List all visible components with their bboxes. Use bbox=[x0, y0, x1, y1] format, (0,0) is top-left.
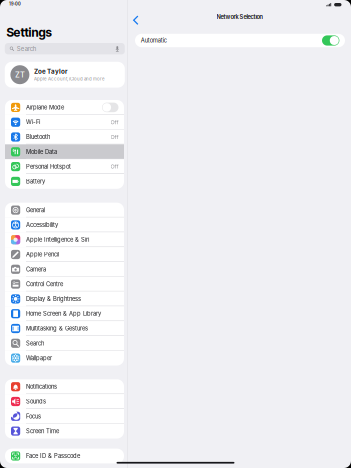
staticText: Off bbox=[110, 163, 118, 170]
button[interactable]: Bluetooth bbox=[5, 130, 124, 144]
staticText: Display & Brightness bbox=[26, 295, 81, 302]
staticText: Airplane Mode bbox=[26, 104, 64, 111]
button[interactable]: Notifications bbox=[5, 379, 124, 394]
staticText: 19:00 bbox=[9, 1, 21, 6]
button[interactable]: ZT bbox=[5, 62, 125, 88]
staticText: Face ID & Passcode bbox=[26, 452, 80, 459]
staticText: Off bbox=[110, 134, 118, 140]
staticText: Search bbox=[26, 340, 44, 347]
button[interactable]: Screen Time bbox=[5, 424, 124, 438]
button[interactable]: Home Screen & App Library bbox=[5, 306, 124, 321]
button[interactable]: Back bbox=[129, 11, 143, 29]
staticText: Screen Time bbox=[26, 428, 59, 435]
button[interactable]: Airplane Mode bbox=[5, 100, 124, 115]
button[interactable]: Mobile Data bbox=[5, 144, 124, 159]
button[interactable]: Wi-Fi bbox=[5, 115, 124, 130]
staticText: Bluetooth bbox=[26, 133, 50, 140]
staticText: Apple Intelligence & Siri bbox=[26, 236, 89, 243]
staticText: Settings bbox=[6, 25, 51, 39]
button[interactable]: Multitasking & Gestures bbox=[5, 321, 124, 336]
staticText: Sounds bbox=[26, 398, 46, 405]
button[interactable]: Apple Intelligence & Siri bbox=[5, 232, 124, 247]
button[interactable]: Control Centre bbox=[5, 277, 124, 291]
button[interactable]: General bbox=[5, 203, 124, 217]
button[interactable]: Wallpaper bbox=[5, 351, 124, 365]
staticText: Wallpaper bbox=[26, 355, 52, 362]
button[interactable]: Battery bbox=[5, 174, 124, 189]
staticText: ZT bbox=[15, 70, 25, 79]
button[interactable]: Display & Brightness bbox=[5, 291, 124, 306]
staticText: Apple Account, iCloud and more bbox=[34, 76, 105, 82]
button[interactable]: Accessibility bbox=[5, 217, 124, 232]
staticText: Notifications bbox=[26, 383, 57, 390]
staticText: Mobile Data bbox=[26, 148, 57, 155]
button[interactable]: Face ID & Passcode bbox=[5, 449, 124, 463]
button[interactable]: Search bbox=[5, 336, 124, 351]
staticText: Camera bbox=[26, 266, 46, 273]
staticText: Battery bbox=[26, 178, 45, 185]
staticText: Multitasking & Gestures bbox=[26, 325, 88, 332]
staticText: Accessibility bbox=[26, 221, 58, 228]
staticText: Home Screen & App Library bbox=[26, 310, 101, 317]
staticText: Focus bbox=[26, 413, 41, 420]
staticText: Zoe Taylor bbox=[34, 68, 68, 75]
staticText: Automatic bbox=[141, 37, 167, 44]
staticText: Search bbox=[17, 45, 37, 52]
button[interactable]: Apple Pencil bbox=[5, 247, 124, 262]
staticText: Wi-Fi bbox=[26, 119, 40, 126]
button[interactable]: Automatic bbox=[135, 34, 345, 47]
button[interactable]: Camera bbox=[5, 262, 124, 277]
staticText: Off bbox=[110, 119, 118, 125]
button[interactable]: Focus bbox=[5, 409, 124, 424]
button[interactable]: Sounds bbox=[5, 394, 124, 409]
staticText: Personal Hotspot bbox=[26, 163, 71, 170]
staticText: General bbox=[26, 207, 45, 214]
staticText: Control Centre bbox=[26, 281, 63, 288]
staticText: Network Selection bbox=[216, 14, 262, 20]
staticText: Apple Pencil bbox=[26, 251, 59, 258]
button[interactable]: Personal Hotspot bbox=[5, 159, 124, 174]
